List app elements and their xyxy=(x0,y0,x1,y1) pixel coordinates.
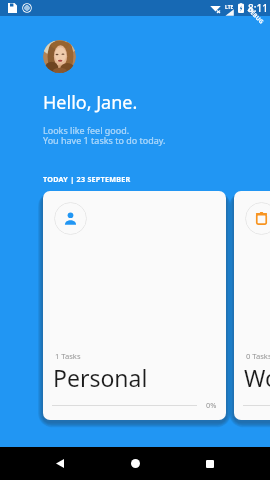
staticText: 1 Tasks xyxy=(55,351,81,361)
staticText: Hello, Jane. xyxy=(43,90,138,115)
staticText: Work xyxy=(244,362,270,393)
staticText: 0 Tasks xyxy=(246,351,270,361)
button[interactable]: Recent apps xyxy=(195,447,225,480)
button[interactable]: 1 Tasks xyxy=(43,191,226,420)
staticText: LTE xyxy=(225,4,234,11)
staticText: 8:11 xyxy=(248,1,268,15)
button[interactable]: Back xyxy=(45,447,75,480)
button[interactable]: 0 Tasks xyxy=(234,191,270,420)
staticText: Personal xyxy=(53,362,148,393)
staticText: 0% xyxy=(206,400,217,410)
button[interactable]: Home xyxy=(120,447,150,480)
staticText: DEBUG xyxy=(246,6,266,25)
staticText: TODAY | 23 SEPTEMBER xyxy=(43,174,131,184)
button[interactable]: Profile xyxy=(43,40,76,73)
staticText: Looks like feel good. You have 1 tasks t… xyxy=(43,124,166,146)
